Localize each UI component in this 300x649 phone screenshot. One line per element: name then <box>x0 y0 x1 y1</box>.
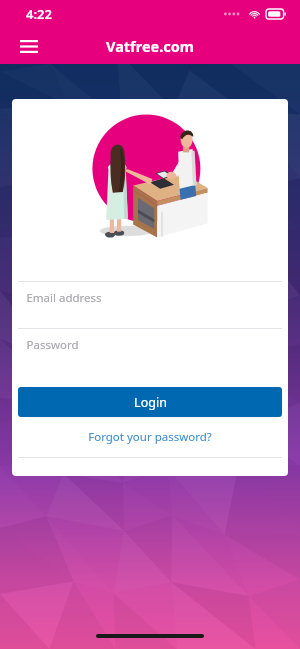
staticText: Login <box>134 394 167 411</box>
staticText: Forgot your password? <box>88 429 212 445</box>
button[interactable]: Forgot your password? <box>12 417 288 457</box>
staticText: Email address <box>26 290 102 306</box>
staticText: Vatfree.com <box>106 36 194 56</box>
button[interactable]: Open navigation menu <box>12 29 46 63</box>
staticText: Password <box>26 337 79 353</box>
button[interactable]: Email address <box>18 281 282 328</box>
button[interactable]: Login <box>18 387 282 417</box>
staticText: 4:22 <box>26 5 52 23</box>
button[interactable]: Password <box>18 328 282 375</box>
